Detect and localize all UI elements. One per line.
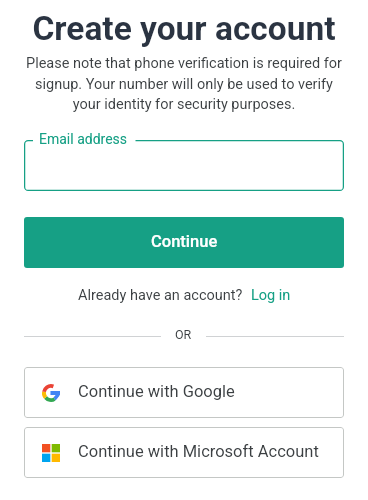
button[interactable]: Google <box>24 367 344 418</box>
button[interactable]: Log in <box>243 287 291 304</box>
staticText: Continue with Google <box>78 382 235 401</box>
other: Microsoft <box>42 444 60 462</box>
button[interactable]: Microsoft <box>24 427 344 478</box>
button[interactable]: Continue <box>24 217 344 268</box>
staticText: Email address <box>39 131 128 147</box>
staticText: Please note that phone verification is r… <box>0 55 368 112</box>
staticText: OR <box>175 327 192 341</box>
staticText: Continue with Microsoft Account <box>78 442 319 461</box>
staticText: Already have an account? <box>78 287 243 304</box>
staticText: Create your account <box>0 9 368 48</box>
other: Google <box>42 384 60 402</box>
button[interactable]: Email address <box>24 140 344 191</box>
staticText: Continue <box>151 232 218 251</box>
staticText: Log in <box>251 287 291 304</box>
